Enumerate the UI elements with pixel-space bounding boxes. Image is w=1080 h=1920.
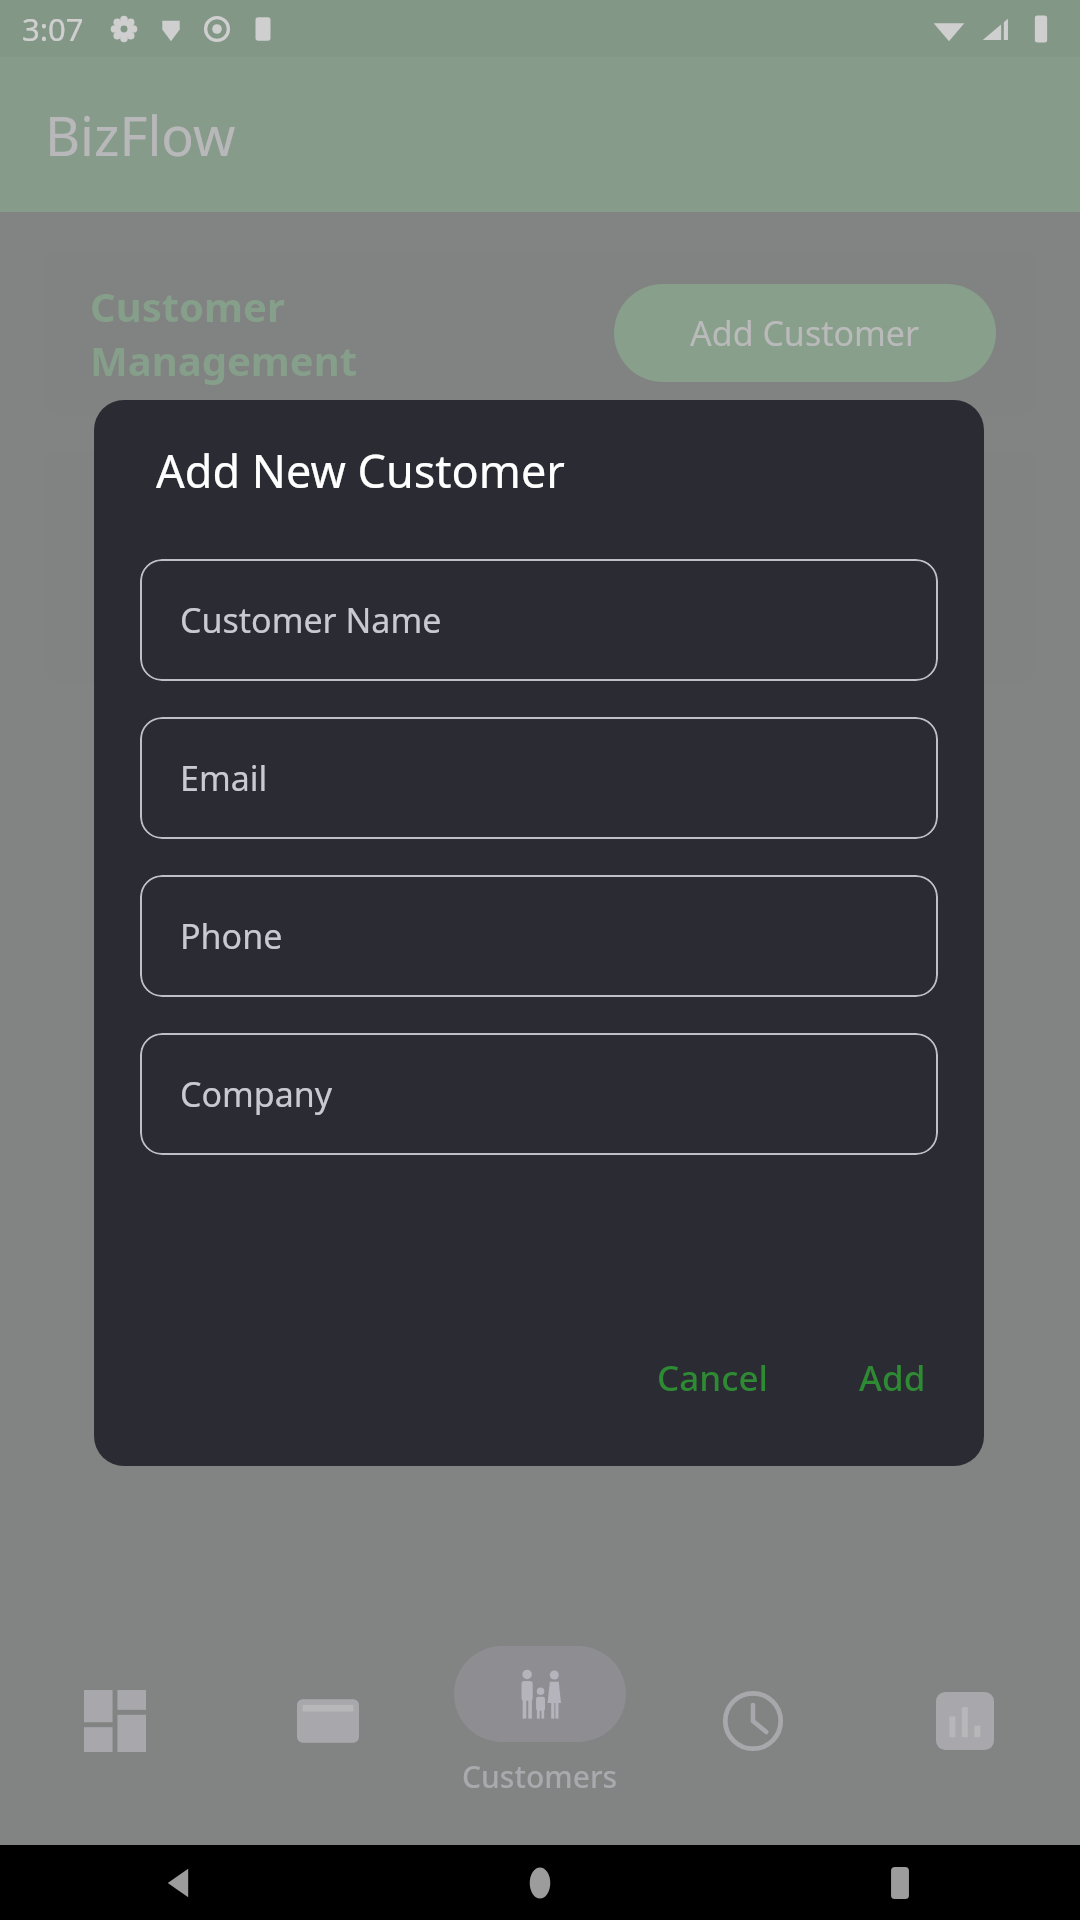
staticText: Customers (462, 1756, 618, 1797)
button[interactable]: Phone (140, 875, 938, 997)
staticText: Company (180, 1071, 333, 1117)
staticText: Add Customer (690, 310, 920, 356)
staticText: Phone (180, 913, 283, 959)
button[interactable]: Home (510, 1853, 570, 1913)
button[interactable]: Add Customer (614, 284, 996, 382)
button[interactable]: Time (654, 1597, 852, 1845)
staticText: Cancel (657, 1354, 768, 1402)
button[interactable]: Cancel (639, 1340, 786, 1416)
staticText: Customer Name (180, 597, 442, 643)
staticText: Email (180, 755, 268, 801)
button[interactable]: Back (150, 1853, 210, 1913)
button[interactable]: Reports (866, 1597, 1064, 1845)
button[interactable]: Add (841, 1340, 944, 1416)
staticText: Add New Customer (156, 440, 565, 501)
button[interactable]: Recents (870, 1853, 930, 1913)
staticText: BizFlow (45, 98, 236, 172)
staticText: 3:07 (22, 8, 84, 50)
button[interactable]: Invoices (229, 1597, 427, 1845)
button[interactable]: Dashboard (16, 1597, 214, 1845)
button[interactable]: Company (140, 1033, 938, 1155)
button[interactable]: Customer Name (140, 559, 938, 681)
button[interactable]: Customers (441, 1597, 639, 1845)
staticText: Customer Management (90, 279, 358, 387)
button[interactable]: Email (140, 717, 938, 839)
staticText: Add (859, 1354, 926, 1402)
